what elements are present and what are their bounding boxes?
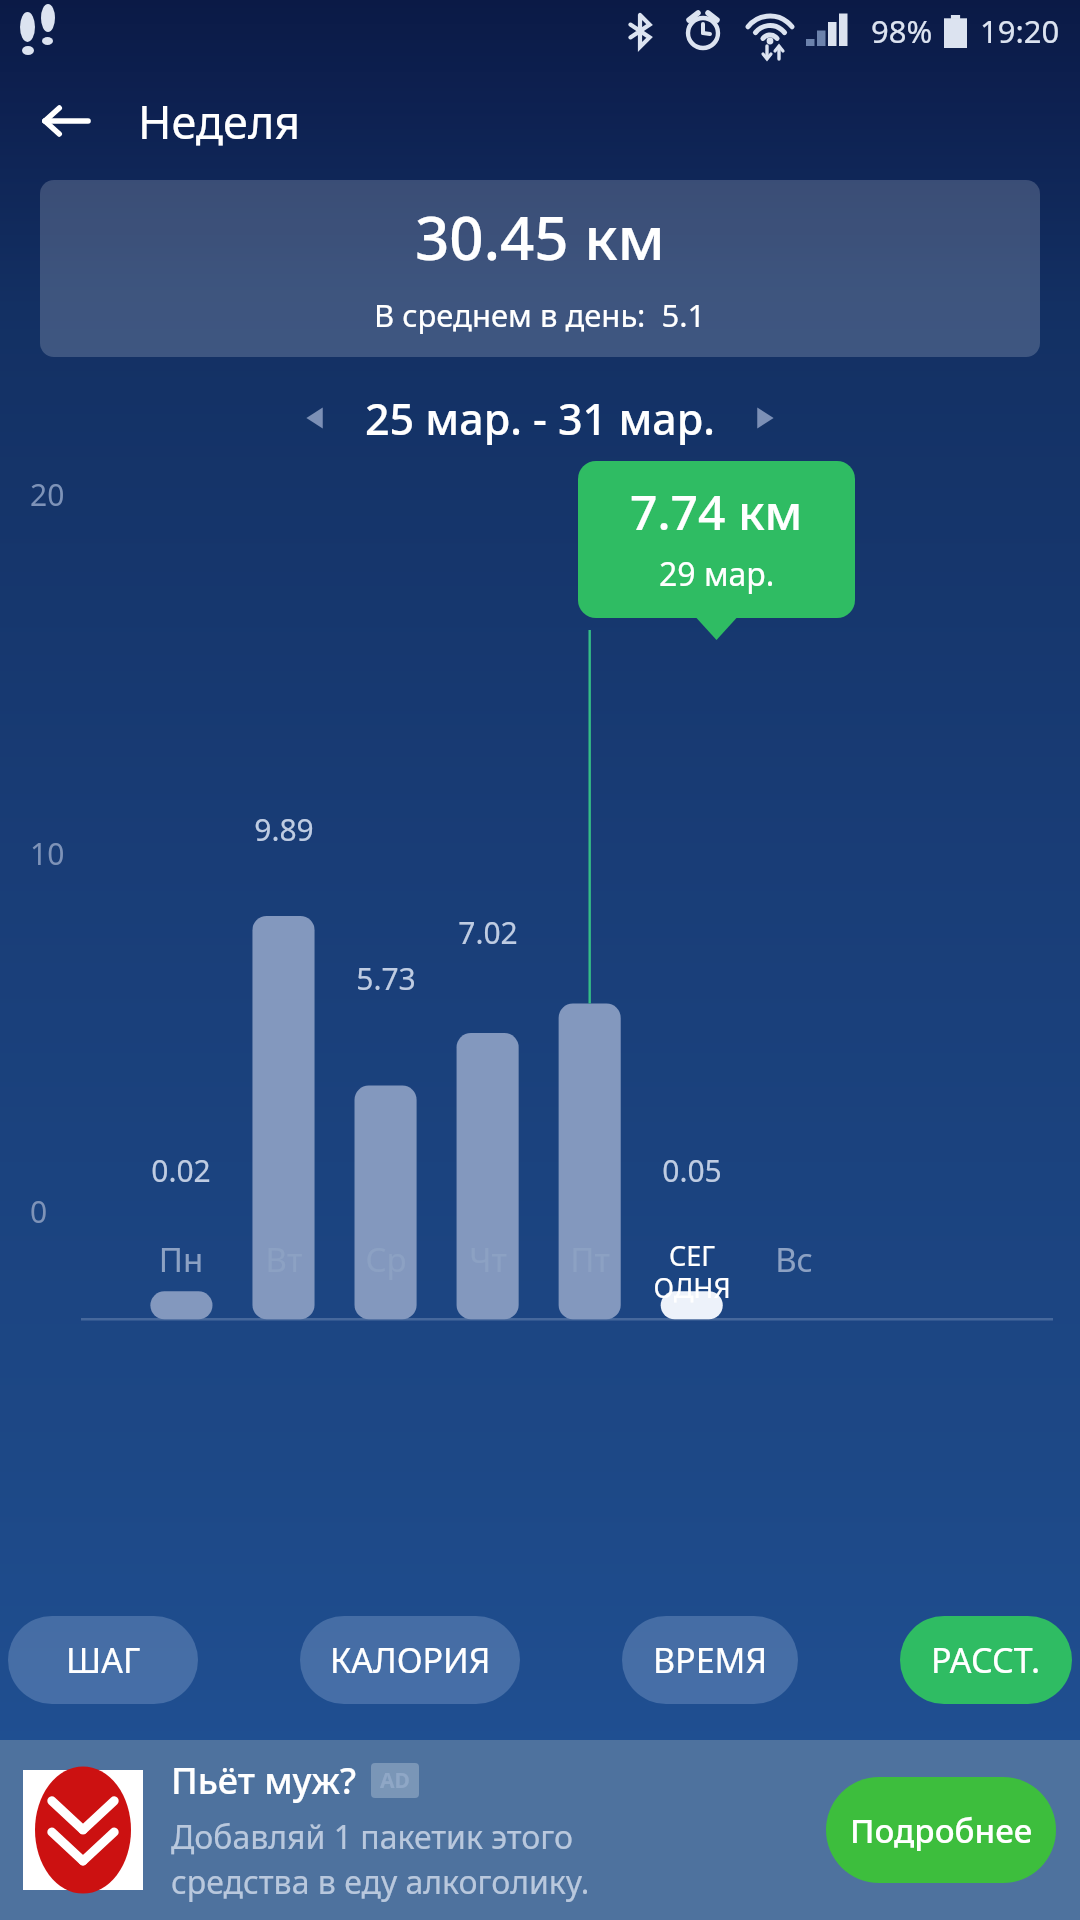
staticText: СЕГ ОДНЯ: [602, 1237, 782, 1306]
staticText: Подробнее: [850, 1808, 1033, 1853]
button[interactable]: Next week: [733, 387, 795, 449]
button[interactable]: 7.74 км: [578, 461, 855, 618]
button[interactable]: 30.45 км: [40, 180, 1040, 357]
staticText: ШАГ: [66, 1637, 141, 1683]
staticText: В среднем в день: 5.1: [374, 294, 706, 336]
staticText: ВРЕМЯ: [653, 1637, 768, 1683]
staticText: РАССТ.: [931, 1637, 1041, 1683]
button[interactable]: КАЛОРИЯ: [300, 1616, 520, 1704]
staticText: 9.89: [204, 809, 364, 850]
staticText: Пн: [91, 1237, 271, 1282]
staticText: AD: [380, 1766, 410, 1795]
button[interactable]: РАССТ.: [900, 1616, 1072, 1704]
staticText: Вт: [194, 1237, 374, 1282]
button[interactable]: ВРЕМЯ: [622, 1616, 798, 1704]
staticText: Ср: [296, 1237, 476, 1282]
staticText: 30.45 км: [415, 196, 665, 278]
staticText: 25 мар. - 31 мар.: [365, 389, 715, 448]
staticText: 20: [30, 474, 65, 515]
staticText: Чт: [398, 1237, 578, 1282]
staticText: 10: [30, 833, 65, 874]
staticText: 0: [30, 1191, 48, 1232]
staticText: Пт: [500, 1237, 680, 1282]
staticText: 0.02: [101, 1150, 261, 1191]
staticText: Вс: [704, 1237, 884, 1282]
button[interactable]: Previous week: [285, 387, 347, 449]
staticText: 7.02: [408, 912, 568, 953]
staticText: 5.73: [306, 958, 466, 999]
staticText: Неделя: [138, 91, 301, 152]
staticText: Пьёт муж?: [171, 1756, 357, 1805]
staticText: 7.74 км: [630, 479, 803, 544]
button[interactable]: Подробнее: [826, 1777, 1056, 1883]
staticText: 19:20: [980, 10, 1060, 52]
button[interactable]: ШАГ: [8, 1616, 198, 1704]
staticText: 0.05: [612, 1150, 772, 1191]
staticText: КАЛОРИЯ: [330, 1637, 491, 1683]
staticText: 29 мар.: [659, 552, 775, 596]
staticText: 98%: [871, 10, 933, 52]
staticText: Добавляй 1 пакетик этого средства в еду …: [171, 1815, 590, 1904]
button[interactable]: Пьёт муж?: [0, 1740, 1080, 1920]
button[interactable]: Back: [26, 81, 106, 161]
